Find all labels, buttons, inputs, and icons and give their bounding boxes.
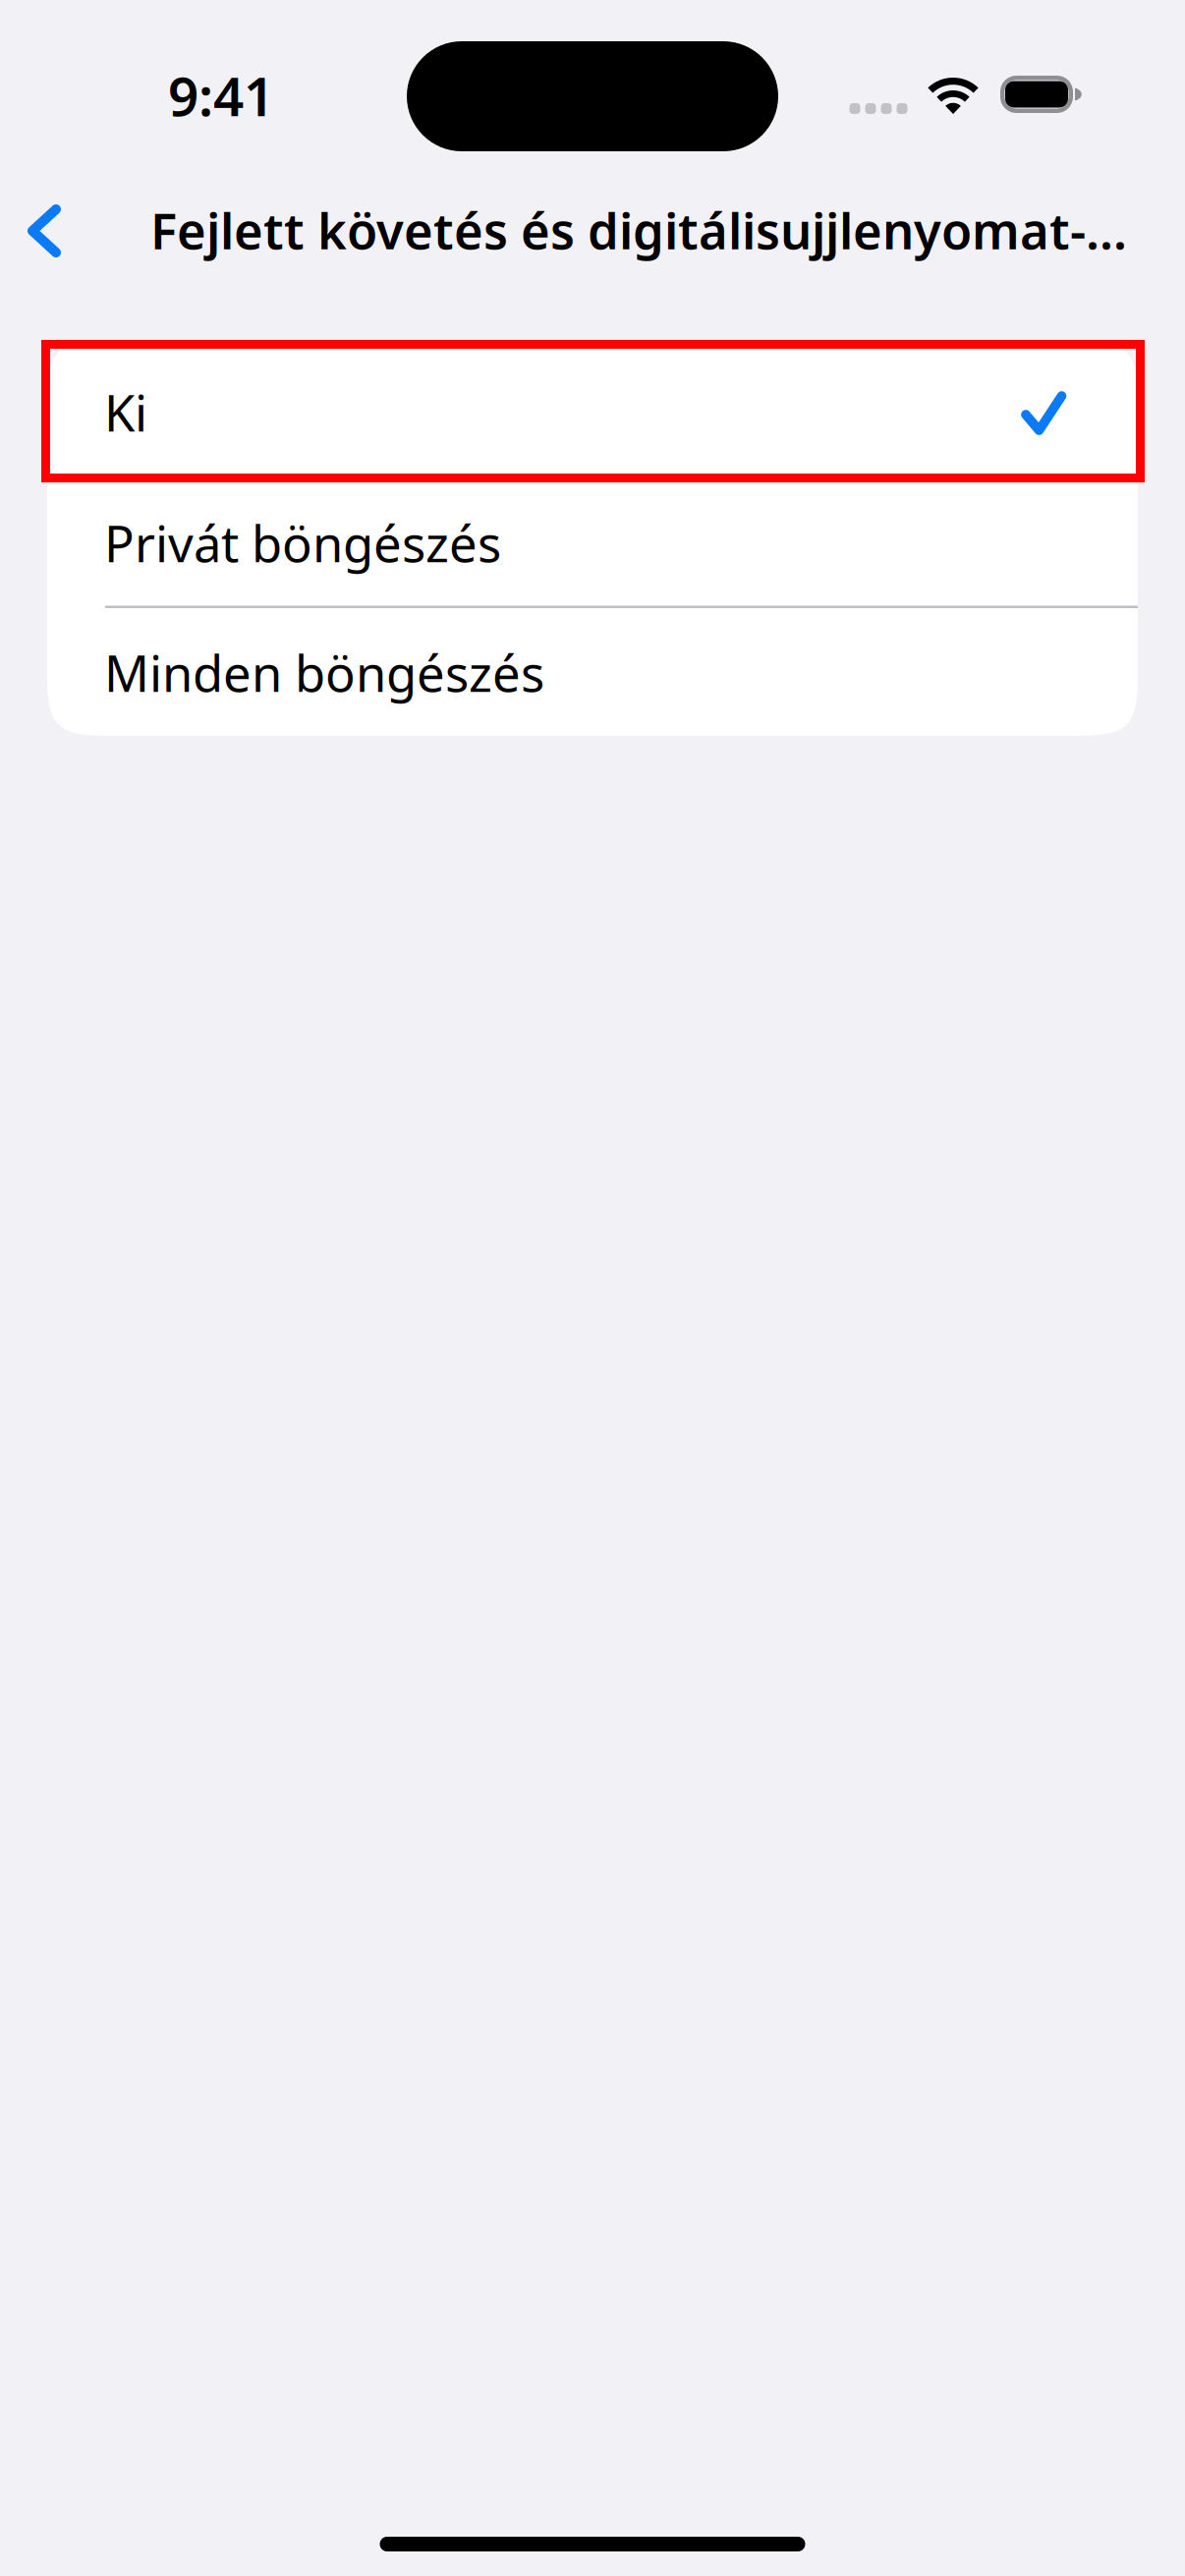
button[interactable]: Minden böngészés xyxy=(47,606,1138,736)
staticText: Fejlett követés és digitálisujjlenyomat-… xyxy=(150,197,1143,263)
button[interactable]: Back xyxy=(28,172,130,290)
staticText: Minden böngészés xyxy=(104,639,544,706)
button[interactable]: Ki xyxy=(47,341,1138,474)
staticText: Privát böngészés xyxy=(104,510,501,576)
staticText: Ki xyxy=(104,379,147,445)
staticText: 9:41 xyxy=(168,60,274,131)
button[interactable]: Privát böngészés xyxy=(47,474,1138,606)
